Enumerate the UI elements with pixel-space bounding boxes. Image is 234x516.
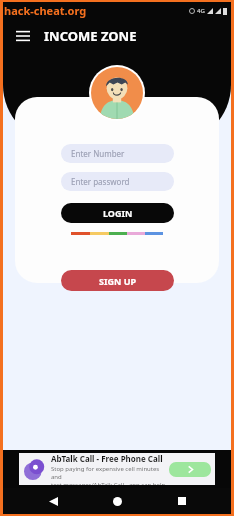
button[interactable]: LOGIN xyxy=(61,203,174,223)
staticText: INCOME ZONE xyxy=(44,27,137,45)
staticText: text messages/AbTalk Call - app can help… xyxy=(51,481,169,485)
button[interactable]: Recent apps xyxy=(167,488,197,514)
staticText: 4G xyxy=(197,7,205,15)
staticText: AbTalk Call - Free Phone Call xyxy=(51,453,163,464)
staticText: LOGIN xyxy=(103,207,133,219)
button[interactable]: Install app xyxy=(169,462,211,477)
button[interactable]: Profile avatar xyxy=(91,67,143,119)
button[interactable]: Advertisement: AbTalk Call xyxy=(19,453,215,485)
staticText: Enter password xyxy=(71,176,130,187)
staticText: Enter Number xyxy=(71,148,125,159)
button[interactable]: Enter Number xyxy=(61,144,174,163)
staticText: hack-cheat.org xyxy=(4,3,87,18)
staticText: SIGN UP xyxy=(99,275,137,287)
staticText: Stop paying for expensive cell minutes a… xyxy=(51,465,169,481)
button[interactable]: Open navigation menu xyxy=(12,25,34,47)
button[interactable]: Enter password xyxy=(61,172,174,191)
button[interactable]: Back xyxy=(38,488,68,514)
button[interactable]: SIGN UP xyxy=(61,270,174,291)
button[interactable]: Home xyxy=(102,488,132,514)
